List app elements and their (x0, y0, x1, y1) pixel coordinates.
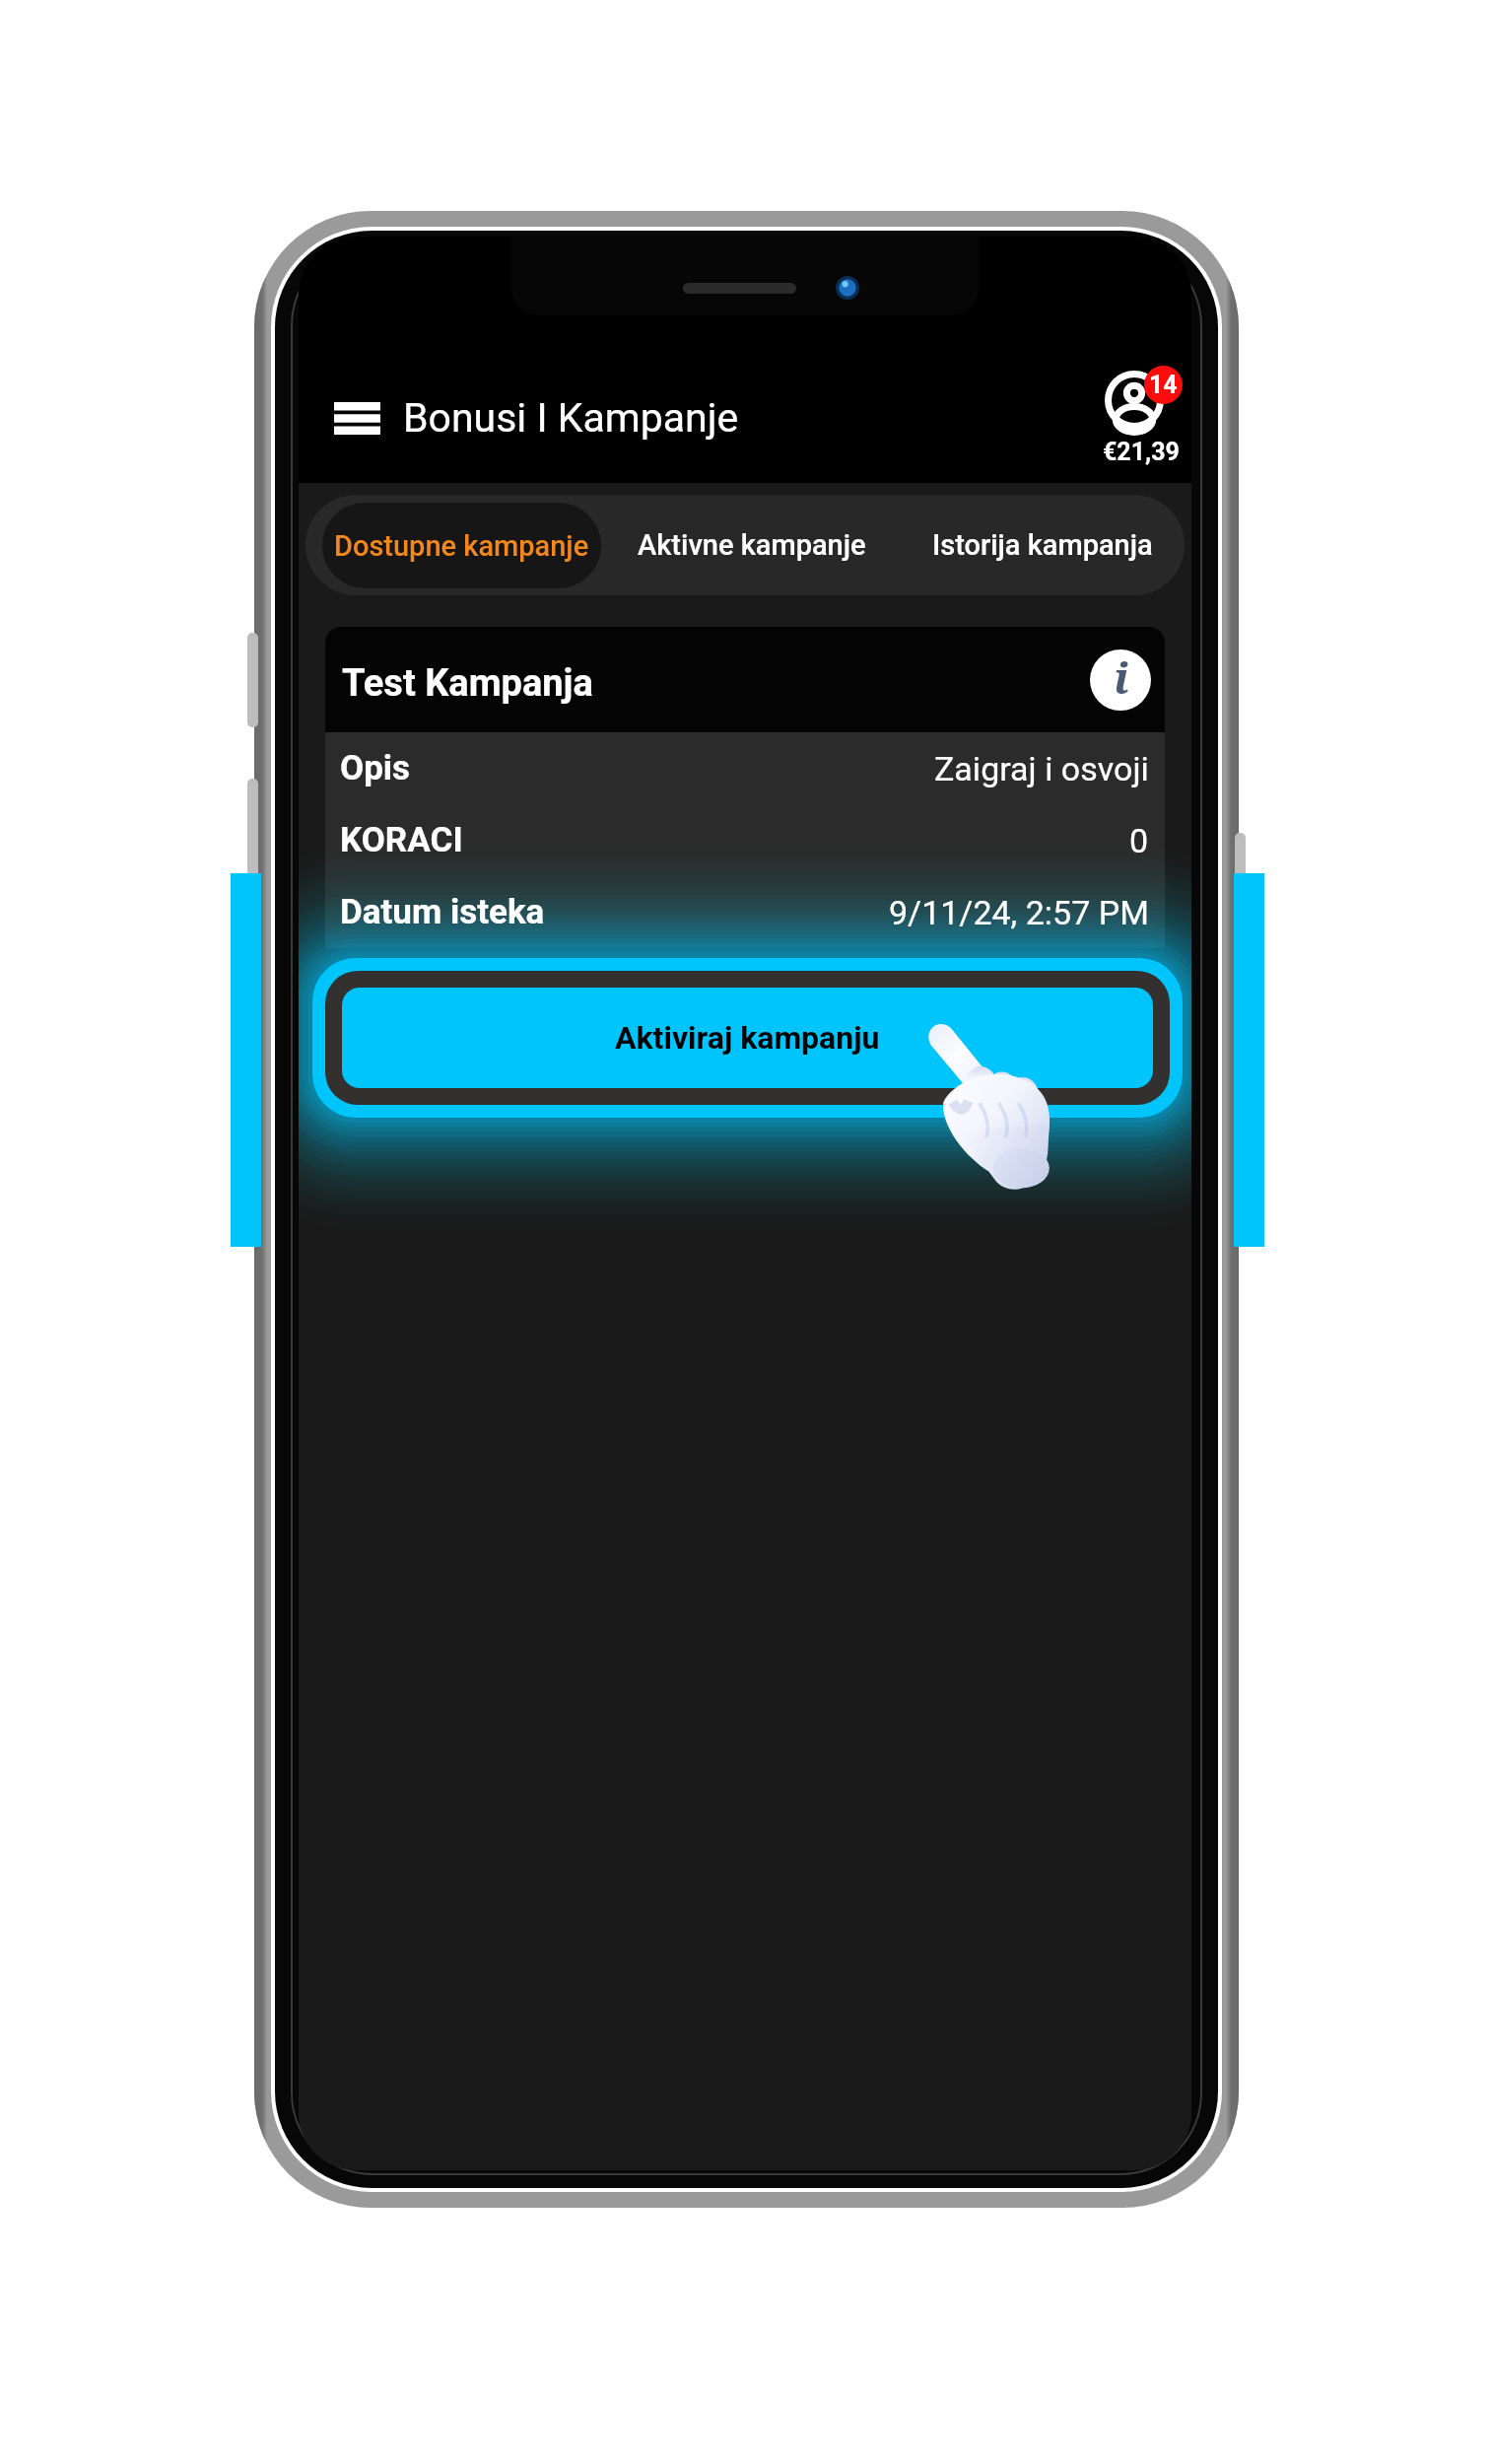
staticText: €21,39 (1103, 438, 1180, 466)
button[interactable]: Aktivne kampanje (624, 495, 880, 595)
staticText: Zaigraj i osvoji (934, 749, 1149, 788)
staticText: Aktiviraj kampanju (615, 1019, 880, 1057)
button[interactable]: Info (1090, 650, 1151, 711)
staticText: 14 (1149, 371, 1178, 399)
staticText: KORACI (340, 820, 463, 860)
button[interactable]: Menu (307, 375, 406, 461)
staticText: Aktivne kampanje (638, 528, 866, 562)
staticText: Test Kampanja (342, 661, 593, 706)
staticText: Dostupne kampanje (334, 529, 589, 563)
staticText: Opis (340, 748, 411, 788)
button[interactable]: Dostupne kampanje (322, 503, 601, 588)
staticText: Bonusi I Kampanje (403, 394, 739, 442)
staticText: Datum isteka (340, 892, 545, 932)
staticText: 0 (1129, 821, 1149, 860)
staticText: i (1114, 650, 1129, 707)
button[interactable]: Account (1063, 367, 1189, 479)
staticText: 9/11/24, 2:57 PM (889, 893, 1149, 932)
staticText: Istorija kampanja (932, 528, 1153, 562)
button[interactable]: Istorija kampanja (916, 495, 1169, 595)
button[interactable]: Aktiviraj kampanju (342, 988, 1153, 1088)
